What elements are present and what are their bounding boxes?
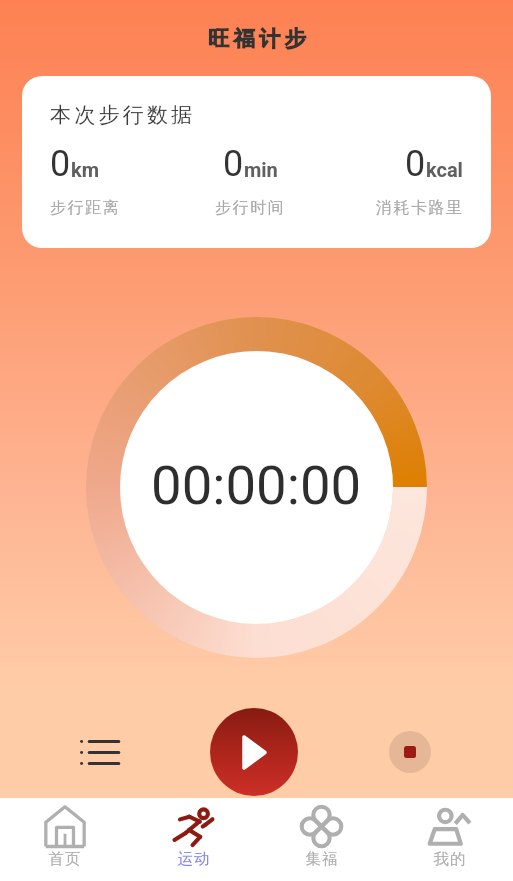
- button[interactable]: 集福: [257, 798, 385, 881]
- staticText: 0: [50, 143, 71, 185]
- staticText: 步行距离: [50, 198, 121, 218]
- button[interactable]: Start: [210, 708, 298, 796]
- staticText: 00:00:00: [151, 453, 362, 517]
- staticText: 集福: [305, 849, 338, 869]
- staticText: 旺福计步: [206, 25, 308, 52]
- staticText: 我的: [433, 849, 466, 869]
- button[interactable]: 首页: [0, 798, 129, 881]
- button[interactable]: Stop: [389, 731, 431, 773]
- staticText: 步行时间: [215, 198, 286, 218]
- staticText: km: [71, 158, 100, 181]
- staticText: kcal: [426, 158, 463, 181]
- staticText: 0: [223, 143, 244, 185]
- staticText: 首页: [48, 849, 81, 869]
- staticText: 0: [405, 143, 426, 185]
- button[interactable]: 运动: [129, 798, 257, 881]
- staticText: min: [244, 158, 278, 181]
- button[interactable]: List: [76, 728, 124, 776]
- staticText: 消耗卡路里: [375, 198, 463, 218]
- button[interactable]: 我的: [385, 798, 513, 881]
- staticText: 本次步行数据: [50, 102, 196, 128]
- staticText: 运动: [177, 849, 210, 869]
